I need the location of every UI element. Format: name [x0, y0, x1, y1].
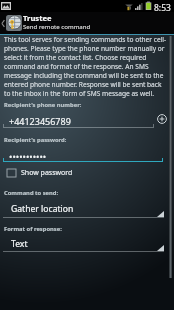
staticText: Send remote command: [23, 22, 91, 30]
button[interactable]: Navigate up: [0, 12, 22, 34]
staticText: 8:53: [154, 2, 171, 14]
button[interactable]: Pick contact: [155, 112, 169, 126]
button[interactable]: Text: [3, 232, 164, 252]
button[interactable]: Gather location: [3, 197, 164, 217]
staticText: Trustee: [23, 13, 52, 23]
staticText: Show password: [21, 168, 73, 178]
button[interactable]: Show password: [4, 166, 73, 180]
staticText: Command to send:: [4, 189, 59, 197]
staticText: Format of response:: [4, 225, 62, 233]
staticText: Text: [11, 238, 28, 250]
staticText: Recipient's password:: [4, 136, 67, 144]
staticText: •••••••••••: [9, 150, 47, 162]
staticText: Gather location: [11, 203, 74, 215]
staticText: Recipient's phone number:: [4, 101, 82, 109]
staticText: +44123456789: [9, 115, 71, 127]
staticText: This tool serves for sending commands to…: [4, 35, 168, 98]
